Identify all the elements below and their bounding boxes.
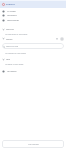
button[interactable]: Search by title bbox=[2, 43, 64, 49]
button[interactable]: All content bbox=[0, 9, 66, 13]
button[interactable]: Space settings bbox=[0, 18, 66, 22]
button[interactable]: Automation bbox=[0, 13, 66, 17]
staticText: Search by title bbox=[6, 45, 19, 48]
staticText: Add content bbox=[28, 143, 39, 146]
button[interactable]: Add content bbox=[60, 37, 63, 40]
staticText: Support bbox=[6, 3, 15, 6]
button[interactable]: Add people bbox=[0, 69, 66, 73]
staticText: Content bbox=[6, 38, 13, 40]
staticText: Space settings bbox=[7, 19, 19, 21]
staticText: No shortcuts in this space bbox=[5, 33, 28, 36]
button[interactable]: Add content bbox=[2, 140, 64, 148]
button[interactable]: Support bbox=[0, 0, 66, 8]
staticText: Automation bbox=[7, 14, 17, 16]
button[interactable]: Content bbox=[2, 37, 55, 40]
staticText: Apps bbox=[6, 58, 11, 60]
staticText: Add people bbox=[7, 70, 17, 72]
button[interactable]: Apps bbox=[0, 57, 66, 61]
staticText: All content bbox=[7, 10, 16, 12]
button[interactable]: Shortcuts bbox=[0, 27, 66, 31]
button[interactable]: Filter bbox=[55, 37, 58, 40]
staticText: Shortcuts bbox=[6, 28, 14, 30]
staticText: No content in this space bbox=[5, 52, 26, 55]
staticText: No apps in this space bbox=[5, 63, 24, 66]
